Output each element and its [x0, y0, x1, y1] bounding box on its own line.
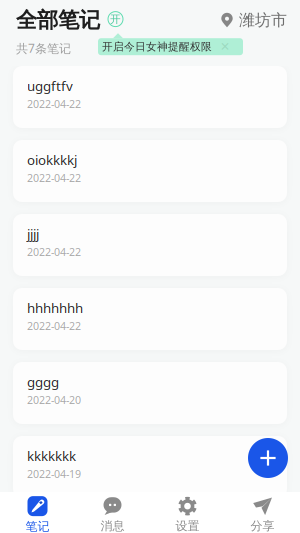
button[interactable]: 开启今日女神提醒权限 — [98, 38, 243, 55]
staticText: 2022-04-22 — [27, 97, 81, 111]
button[interactable]: kkkkkkk — [13, 436, 287, 498]
button[interactable]: 设置 — [150, 492, 225, 533]
button[interactable]: jjjj — [13, 214, 287, 276]
staticText: 消息 — [100, 519, 124, 533]
staticText: 2022-04-19 — [27, 467, 81, 481]
button[interactable]: 笔记 — [0, 491, 75, 533]
button[interactable]: oiokkkkj — [13, 140, 287, 202]
staticText: hhhhhhh — [27, 299, 83, 317]
button[interactable]: 潍坊市 — [220, 10, 287, 30]
staticText: oiokkkkj — [27, 151, 77, 169]
staticText: jjjj — [27, 225, 39, 243]
staticText: 2022-04-22 — [27, 245, 81, 259]
button[interactable]: 消息 — [75, 492, 150, 533]
staticText: uggftfv — [27, 77, 73, 95]
button[interactable]: hhhhhhh — [13, 288, 287, 350]
staticText: 2022-04-22 — [27, 319, 81, 333]
staticText: 开启今日女神提醒权限 — [102, 40, 212, 53]
staticText: 2022-04-22 — [27, 171, 81, 185]
button[interactable]: 分享 — [225, 492, 300, 533]
staticText: 分享 — [250, 519, 274, 533]
staticText: 笔记 — [25, 519, 49, 533]
staticText: 2022-04-20 — [27, 393, 81, 407]
staticText: 全部笔记 — [16, 7, 100, 33]
button[interactable]: uggftfv — [13, 66, 287, 128]
button[interactable]: gggg — [13, 362, 287, 424]
staticText: gggg — [27, 373, 59, 391]
staticText: 设置 — [175, 519, 199, 533]
staticText: kkkkkkk — [27, 447, 76, 465]
staticText: 潍坊市 — [239, 10, 287, 30]
staticText: 开 — [110, 13, 121, 26]
staticText: ffff — [27, 521, 45, 533]
button[interactable]: New note — [248, 438, 288, 478]
staticText: 共7条笔记 — [16, 40, 71, 56]
button[interactable]: ffff — [13, 510, 287, 533]
staticText: ✕ — [220, 40, 230, 53]
